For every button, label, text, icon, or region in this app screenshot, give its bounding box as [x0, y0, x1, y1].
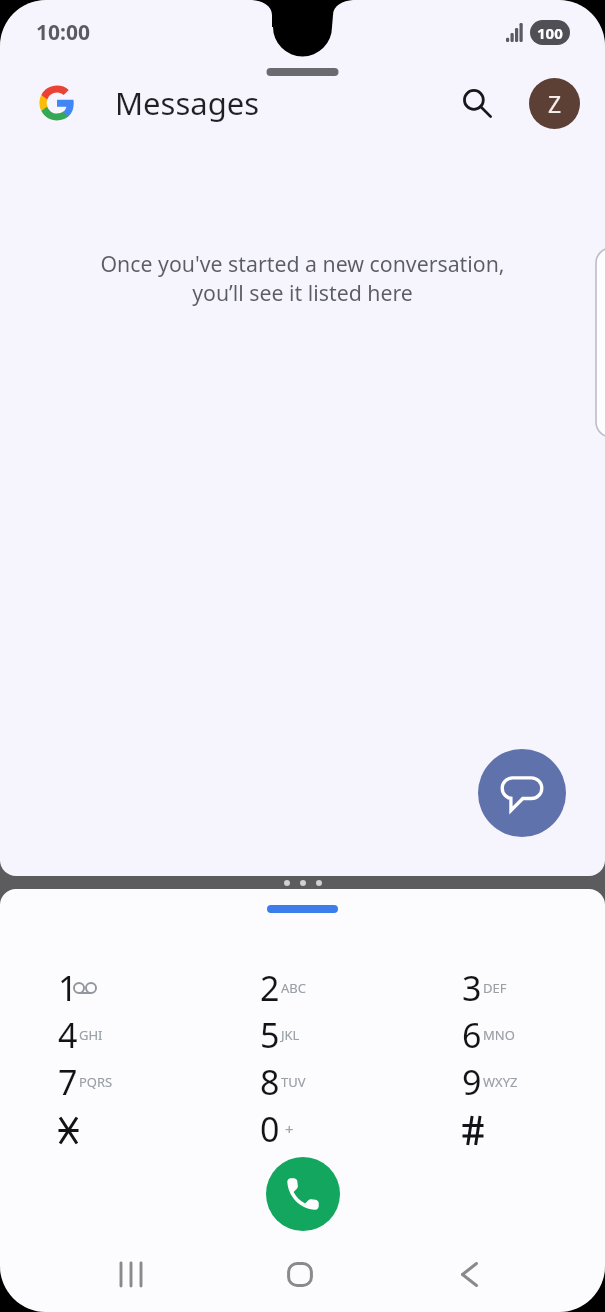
- button[interactable]: Back: [414, 1237, 524, 1312]
- staticText: WXYZ: [483, 1073, 518, 1091]
- button[interactable]: 2: [201, 964, 403, 1011]
- staticText: 5: [260, 1012, 280, 1058]
- button[interactable]: 8: [201, 1058, 403, 1105]
- staticText: 3: [462, 965, 482, 1011]
- staticText: DEF: [483, 979, 507, 997]
- button[interactable]: 7: [0, 1058, 201, 1105]
- staticText: 4: [58, 1012, 78, 1058]
- button[interactable]: 5: [201, 1011, 403, 1058]
- button[interactable]: Recents: [76, 1237, 186, 1312]
- button[interactable]: Expand keypad: [267, 905, 338, 913]
- staticText: 8: [260, 1059, 280, 1105]
- staticText: Z: [548, 88, 562, 119]
- staticText: 6: [462, 1012, 482, 1058]
- button[interactable]: 1: [0, 964, 201, 1011]
- staticText: GHI: [79, 1026, 103, 1044]
- staticText: TUV: [281, 1073, 306, 1091]
- button[interactable]: 3: [403, 964, 605, 1011]
- button[interactable]: Account: [529, 78, 580, 129]
- staticText: Once you've started a new conversation, …: [100, 249, 505, 307]
- staticText: 10:00: [36, 18, 90, 47]
- staticText: 0: [260, 1106, 280, 1152]
- staticText: +: [285, 1119, 294, 1139]
- button[interactable]: [0, 1105, 201, 1152]
- staticText: MNO: [483, 1026, 515, 1044]
- staticText: JKL: [281, 1026, 300, 1044]
- button[interactable]: 4: [0, 1011, 201, 1058]
- staticText: 7: [58, 1059, 78, 1105]
- button[interactable]: Call: [266, 1157, 340, 1231]
- staticText: 1: [58, 965, 78, 1011]
- button[interactable]: 0: [201, 1105, 403, 1152]
- staticText: 100: [537, 23, 563, 43]
- button[interactable]: 6: [403, 1011, 605, 1058]
- button[interactable]: 9: [403, 1058, 605, 1105]
- staticText: 2: [260, 965, 280, 1011]
- button[interactable]: [403, 1105, 605, 1152]
- button[interactable]: Search: [451, 77, 503, 129]
- staticText: PQRS: [79, 1073, 113, 1091]
- button[interactable]: Start chat: [478, 749, 566, 837]
- staticText: ABC: [281, 979, 306, 997]
- button[interactable]: Home: [245, 1237, 355, 1312]
- staticText: Messages: [115, 82, 260, 124]
- staticText: 9: [462, 1059, 482, 1105]
